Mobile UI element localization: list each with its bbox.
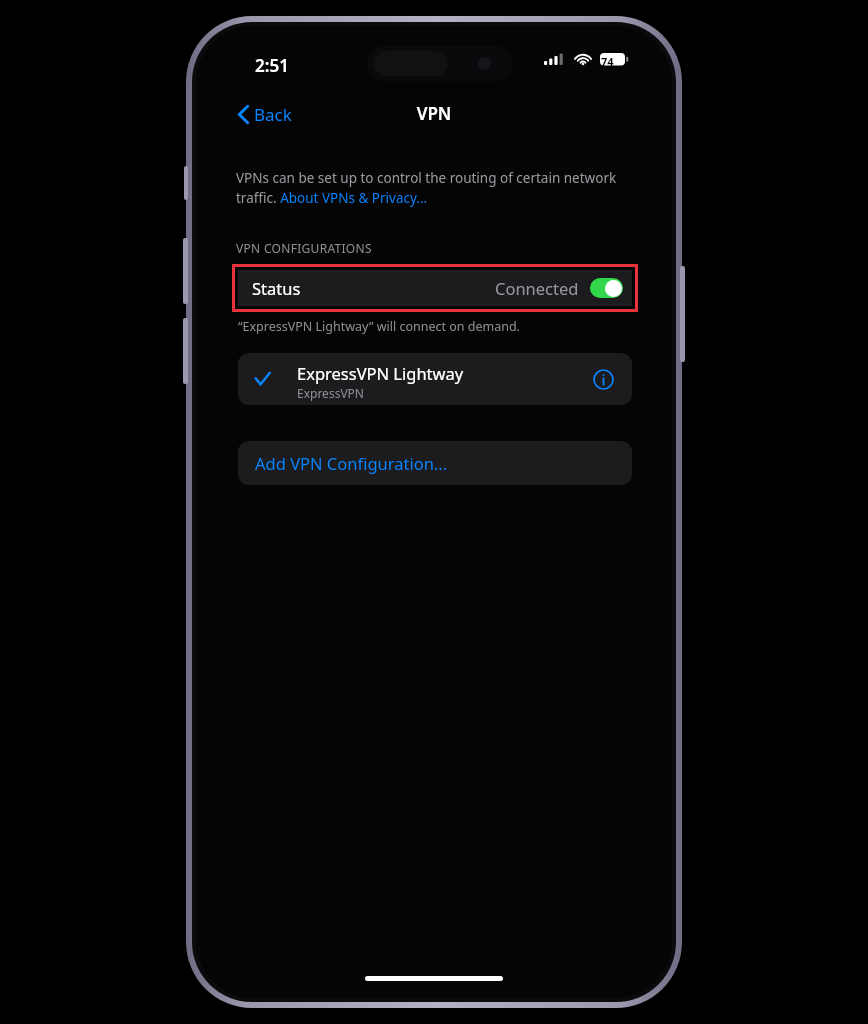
staticText: Connected [495,277,579,299]
staticText: “ExpressVPN Lightway” will connect on de… [238,318,520,335]
staticText: ExpressVPN [297,385,364,401]
staticText: Back [254,103,292,126]
button[interactable]: VPN status toggle, on [590,278,623,298]
staticText: VPN CONFIGURATIONS [236,240,372,256]
button[interactable]: Status [238,270,632,306]
button[interactable]: ExpressVPN Lightway [238,353,632,405]
staticText: 2:51 [255,54,289,77]
staticText: 74 [601,54,614,69]
button[interactable]: Back [234,99,296,130]
staticText: VPNs can be set up to control the routin… [236,169,631,207]
staticText: VPN [196,102,672,125]
staticText: ExpressVPN Lightway [297,362,464,384]
button[interactable]: Add VPN Configuration... [238,441,632,485]
button[interactable]: More info about ExpressVPN Lightway [588,364,618,394]
staticText: Status [252,277,301,299]
staticText: Add VPN Configuration... [255,452,448,474]
